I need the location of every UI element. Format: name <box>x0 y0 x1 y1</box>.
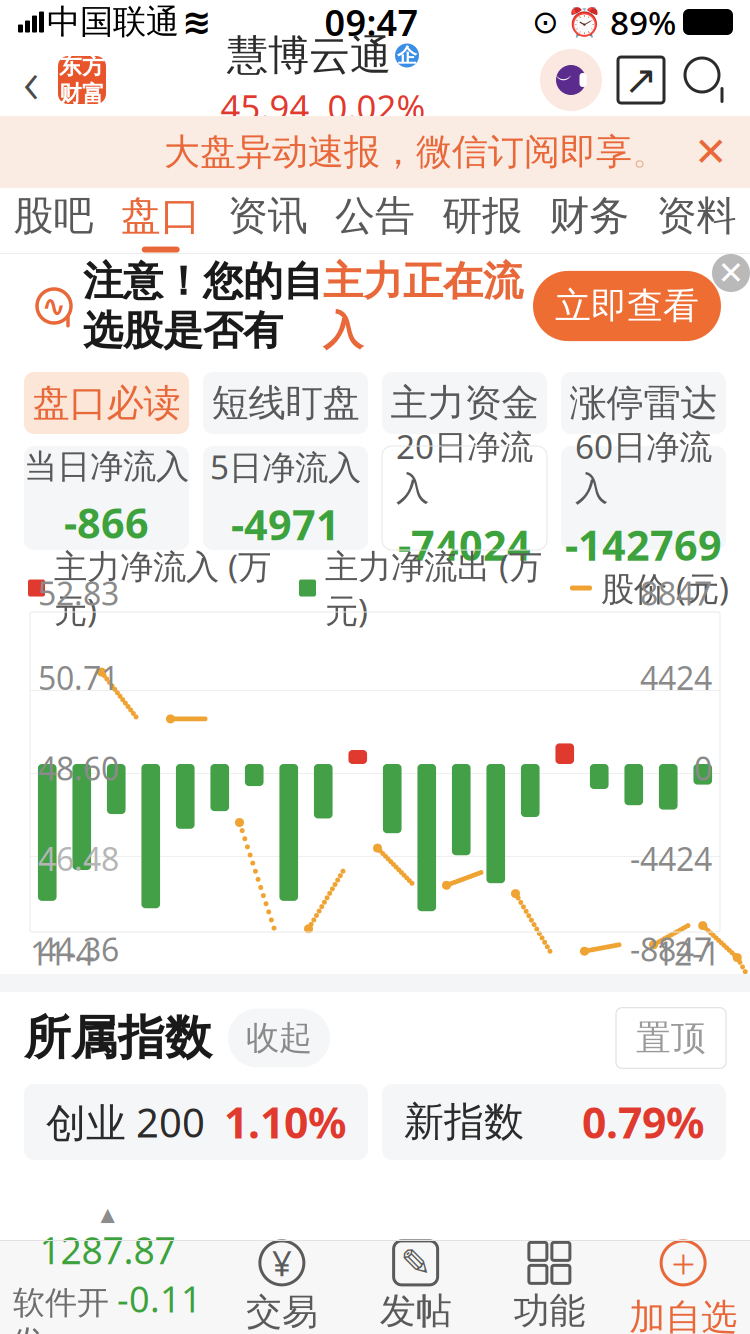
button[interactable]: 大盘异动速报，微信订阅即享 <box>0 116 750 188</box>
staticText: 软件开发 <box>13 1283 109 1334</box>
button[interactable]: 涨停雷达 <box>561 372 726 434</box>
staticText: 慧博云通 <box>227 30 391 81</box>
staticText: 发帖 <box>380 1289 452 1333</box>
staticText: 52.83 <box>38 572 119 614</box>
button[interactable]: 公告 <box>321 188 428 254</box>
button[interactable]: 搜索 <box>680 53 734 107</box>
staticText: 资料 <box>656 191 736 240</box>
staticText: + <box>671 1235 695 1291</box>
staticText: 注意！您的自选股是否有 <box>83 257 323 355</box>
staticText: 立即查看 <box>555 284 699 328</box>
button[interactable]: 功能 <box>482 1241 616 1333</box>
staticText: ⊙ <box>532 4 559 40</box>
staticText: ∿ <box>41 289 66 323</box>
staticText: ⏰ <box>567 6 602 38</box>
button[interactable]: 20日净流入 <box>382 446 547 550</box>
staticText: 主力正在流入 <box>323 257 523 355</box>
staticText: 财富 <box>59 80 105 108</box>
staticText: 44.36 <box>38 928 119 970</box>
staticText: 东方 <box>59 52 105 80</box>
staticText: 89% <box>610 0 676 44</box>
staticText: ✎ <box>400 1242 431 1284</box>
staticText: 财务 <box>549 191 629 240</box>
button[interactable]: 60日净流入 <box>561 446 726 550</box>
staticText: 主力净流入 (万元) <box>54 544 271 632</box>
button[interactable]: 资讯 <box>214 188 321 254</box>
staticText: 60日净流入 <box>575 424 712 509</box>
staticText: ✕ <box>717 255 744 291</box>
button[interactable]: 股吧 <box>0 188 107 254</box>
staticText: -4424 <box>630 837 712 880</box>
staticText: 所属指数 <box>24 1009 212 1067</box>
staticText: 主力资金 <box>390 380 538 426</box>
staticText: 20日净流入 <box>396 424 533 509</box>
staticText: 大盘异动速报，微信订阅即享 <box>164 130 632 174</box>
button[interactable]: 短线盯盘 <box>203 372 368 434</box>
staticText: -4971 <box>231 497 340 552</box>
staticText: ¥ <box>272 1240 292 1286</box>
staticText: 新指数 <box>404 1097 524 1146</box>
button[interactable]: 新指数 <box>382 1084 726 1160</box>
staticText: 1.10% <box>224 1094 346 1150</box>
button[interactable]: 5日净流入 <box>203 446 368 550</box>
button[interactable]: 财务 <box>536 188 643 254</box>
button[interactable]: 收起 <box>228 1008 330 1067</box>
staticText: 0 <box>694 747 712 789</box>
staticText: 0.79% <box>582 1094 704 1150</box>
staticText: 企 <box>397 43 417 68</box>
staticText: ≋ <box>182 2 211 42</box>
staticText: 主力净流出 (万元) <box>325 544 542 632</box>
staticText: 5日净流入 <box>210 444 361 489</box>
button[interactable]: ✎ <box>349 1241 483 1333</box>
staticText: -142769 <box>565 517 722 572</box>
staticText: 短线盯盘 <box>211 380 359 426</box>
staticText: 1287.87 <box>39 1225 175 1275</box>
staticText: 资讯 <box>228 191 308 240</box>
staticText: 加自选 <box>629 1295 737 1334</box>
button[interactable]: 研报 <box>429 188 536 254</box>
button[interactable]: 关闭广告 <box>712 254 750 292</box>
button[interactable]: ∿ <box>11 257 739 355</box>
staticText: 研报 <box>442 191 522 240</box>
staticText: -866 <box>64 495 149 550</box>
button[interactable]: 盘口 <box>107 188 214 254</box>
button[interactable]: 分享 <box>618 57 664 103</box>
staticText: 50.71 <box>38 656 119 699</box>
staticText: ▲ <box>100 1204 114 1225</box>
button[interactable]: AI 助手 <box>540 49 602 111</box>
staticText: 12-1 <box>656 932 720 974</box>
button[interactable]: 置顶 <box>616 1008 726 1068</box>
button[interactable]: 创业 200 <box>24 1084 368 1160</box>
staticText: 创业 200 <box>46 1095 205 1148</box>
staticText: 11-4 <box>30 932 94 974</box>
staticText: 46.48 <box>38 837 119 880</box>
button[interactable]: + <box>616 1235 750 1334</box>
staticText: 公告 <box>335 191 415 240</box>
staticText: 8847 <box>640 572 712 614</box>
staticText: ▼ <box>430 540 453 574</box>
button[interactable]: 当日净流入 <box>24 446 189 550</box>
button[interactable]: 盘口必读 <box>24 372 189 434</box>
staticText: 股价 (元) <box>601 566 729 610</box>
staticText: 45.94 0.02% <box>220 84 425 130</box>
staticText: 股吧 <box>14 191 94 240</box>
staticText: -8847 <box>630 928 712 970</box>
staticText: 涨停雷达 <box>569 380 717 426</box>
button[interactable]: 主力资金 <box>382 372 547 434</box>
staticText: 中国联通 <box>47 1 179 42</box>
button[interactable]: 返回 <box>4 45 58 115</box>
staticText: ︶ <box>555 69 572 91</box>
staticText: 48.60 <box>38 747 119 789</box>
staticText: ✕ <box>694 129 728 175</box>
button[interactable]: ▲ <box>0 1204 215 1334</box>
staticText: 盘口必读 <box>32 380 180 426</box>
button[interactable]: 东方财富 <box>58 56 106 104</box>
button[interactable]: 资料 <box>643 188 750 254</box>
staticText: 09:47 <box>324 0 418 46</box>
staticText: -74024 <box>398 517 531 572</box>
staticText: 交易 <box>246 1290 318 1334</box>
staticText: 盘口 <box>121 191 201 240</box>
staticText: 收起 <box>246 1017 312 1058</box>
button[interactable]: 慧博云通 <box>220 30 425 130</box>
button[interactable]: ¥ <box>215 1240 349 1334</box>
